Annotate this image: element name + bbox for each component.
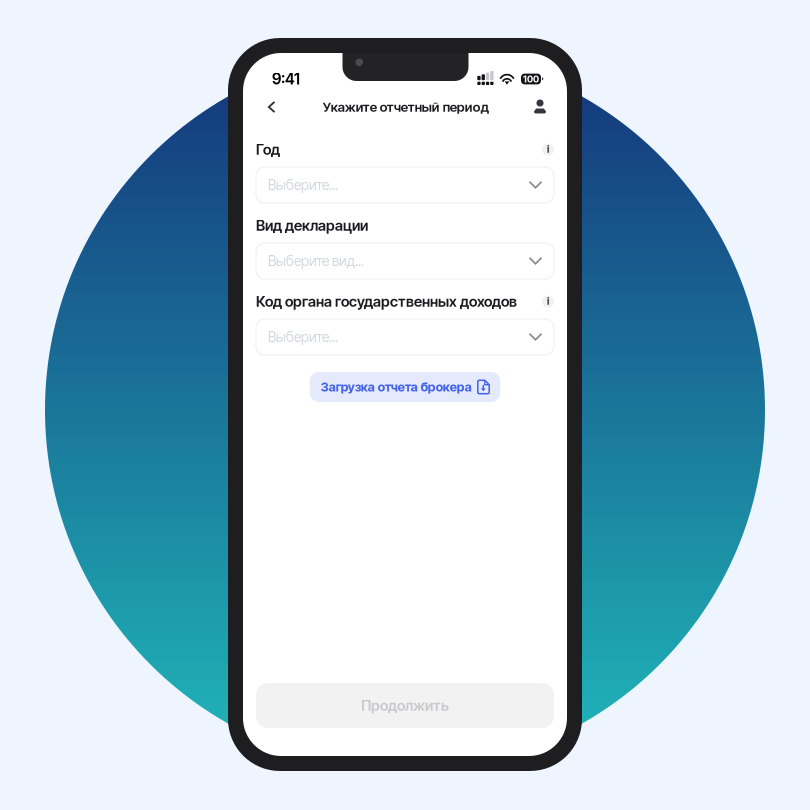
staticText: i (547, 143, 549, 155)
button[interactable]: Выберите вид... (256, 243, 554, 279)
button[interactable]: Profile (527, 94, 553, 120)
button[interactable]: Загрузка отчета брокера (310, 372, 500, 402)
staticText: Выберите... (268, 328, 338, 345)
button[interactable]: Back (258, 94, 284, 120)
staticText: Вид декларации (256, 217, 368, 234)
staticText: Выберите вид... (268, 252, 364, 269)
staticText: Год (256, 141, 280, 158)
staticText: 9:41 (272, 70, 300, 88)
button[interactable]: Выберите... (256, 319, 554, 355)
button[interactable]: Продолжить (256, 683, 554, 728)
staticText: Продолжить (361, 697, 449, 714)
staticText: 100 (523, 73, 539, 85)
staticText: Укажите отчетный период (323, 99, 489, 115)
button[interactable]: Выберите... (256, 167, 554, 203)
staticText: Выберите... (268, 176, 338, 193)
staticText: i (547, 295, 549, 307)
staticText: Код органа государственных доходов (256, 293, 517, 310)
staticText: Загрузка отчета брокера (321, 379, 472, 395)
